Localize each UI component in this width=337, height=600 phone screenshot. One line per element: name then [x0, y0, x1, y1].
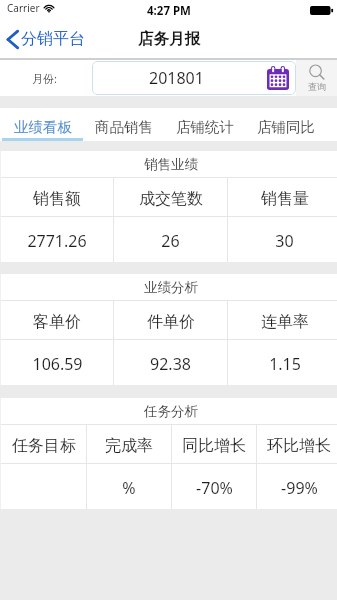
staticText: 店铺统计 [176, 118, 234, 136]
button[interactable]: 店铺同比 [245, 108, 326, 141]
staticText: 成交笔数 [139, 189, 203, 209]
button[interactable]: 同比增长 [172, 428, 256, 463]
button[interactable]: % [87, 467, 171, 509]
staticText: 30 [275, 230, 294, 252]
staticText: 件单价 [147, 312, 195, 332]
staticText: Carrier [7, 1, 40, 15]
button[interactable]: 分销平台 [0, 25, 93, 53]
button[interactable]: 92.38 [114, 343, 227, 385]
staticText: 4:27 PM [147, 3, 191, 19]
staticText: 店务月报 [138, 29, 200, 49]
staticText: 同比增长 [182, 436, 246, 456]
staticText: 销售量 [261, 189, 309, 209]
staticText: 查询 [308, 81, 326, 92]
staticText: 2771.26 [27, 230, 87, 252]
staticText: 分销平台 [21, 29, 85, 49]
button[interactable]: 1.15 [228, 343, 337, 385]
button[interactable]: -99% [257, 467, 337, 509]
staticText: 业绩看板 [14, 118, 72, 136]
staticText: 92.38 [150, 353, 191, 375]
staticText: 201801 [149, 67, 204, 89]
button[interactable]: 销售额 [1, 181, 113, 216]
staticText: -70% [196, 477, 233, 499]
button[interactable]: 完成率 [87, 428, 171, 463]
button[interactable]: 店铺统计 [164, 108, 245, 141]
staticText: 业绩分析 [144, 279, 198, 296]
staticText: -99% [281, 477, 318, 499]
button[interactable]: 任务目标 [1, 428, 86, 463]
button[interactable]: 查询 [296, 60, 337, 96]
button[interactable]: 2771.26 [1, 220, 113, 262]
button[interactable]: -70% [172, 467, 256, 509]
staticText: 连单率 [261, 312, 309, 332]
button[interactable]: 106.59 [1, 343, 113, 385]
staticText: 1.15 [269, 353, 301, 375]
button[interactable]: 客单价 [1, 304, 113, 339]
staticText: 任务分析 [144, 403, 198, 420]
staticText: 106.59 [32, 353, 83, 375]
button[interactable]: 件单价 [114, 304, 227, 339]
staticText: 销售业绩 [144, 156, 198, 173]
button[interactable]: 201801 [92, 61, 296, 95]
staticText: 商品销售 [95, 118, 153, 136]
button[interactable]: 销售量 [228, 181, 337, 216]
button[interactable]: 业绩看板 [2, 108, 83, 141]
staticText: 26 [161, 230, 180, 252]
button[interactable]: 环比增长 [257, 428, 337, 463]
button[interactable]: 26 [114, 220, 227, 262]
staticText: 环比增长 [267, 436, 331, 456]
staticText: % [122, 477, 136, 499]
staticText: 任务目标 [12, 436, 76, 456]
staticText: 完成率 [105, 436, 153, 456]
staticText: 店铺同比 [257, 118, 315, 136]
button[interactable]: 商品销售 [83, 108, 164, 141]
staticText: 月份: [32, 71, 57, 86]
staticText: 销售额 [33, 189, 81, 209]
button[interactable]: 30 [228, 220, 337, 262]
button[interactable]: 连单率 [228, 304, 337, 339]
button[interactable]: 成交笔数 [114, 181, 227, 216]
staticText: 客单价 [33, 312, 81, 332]
